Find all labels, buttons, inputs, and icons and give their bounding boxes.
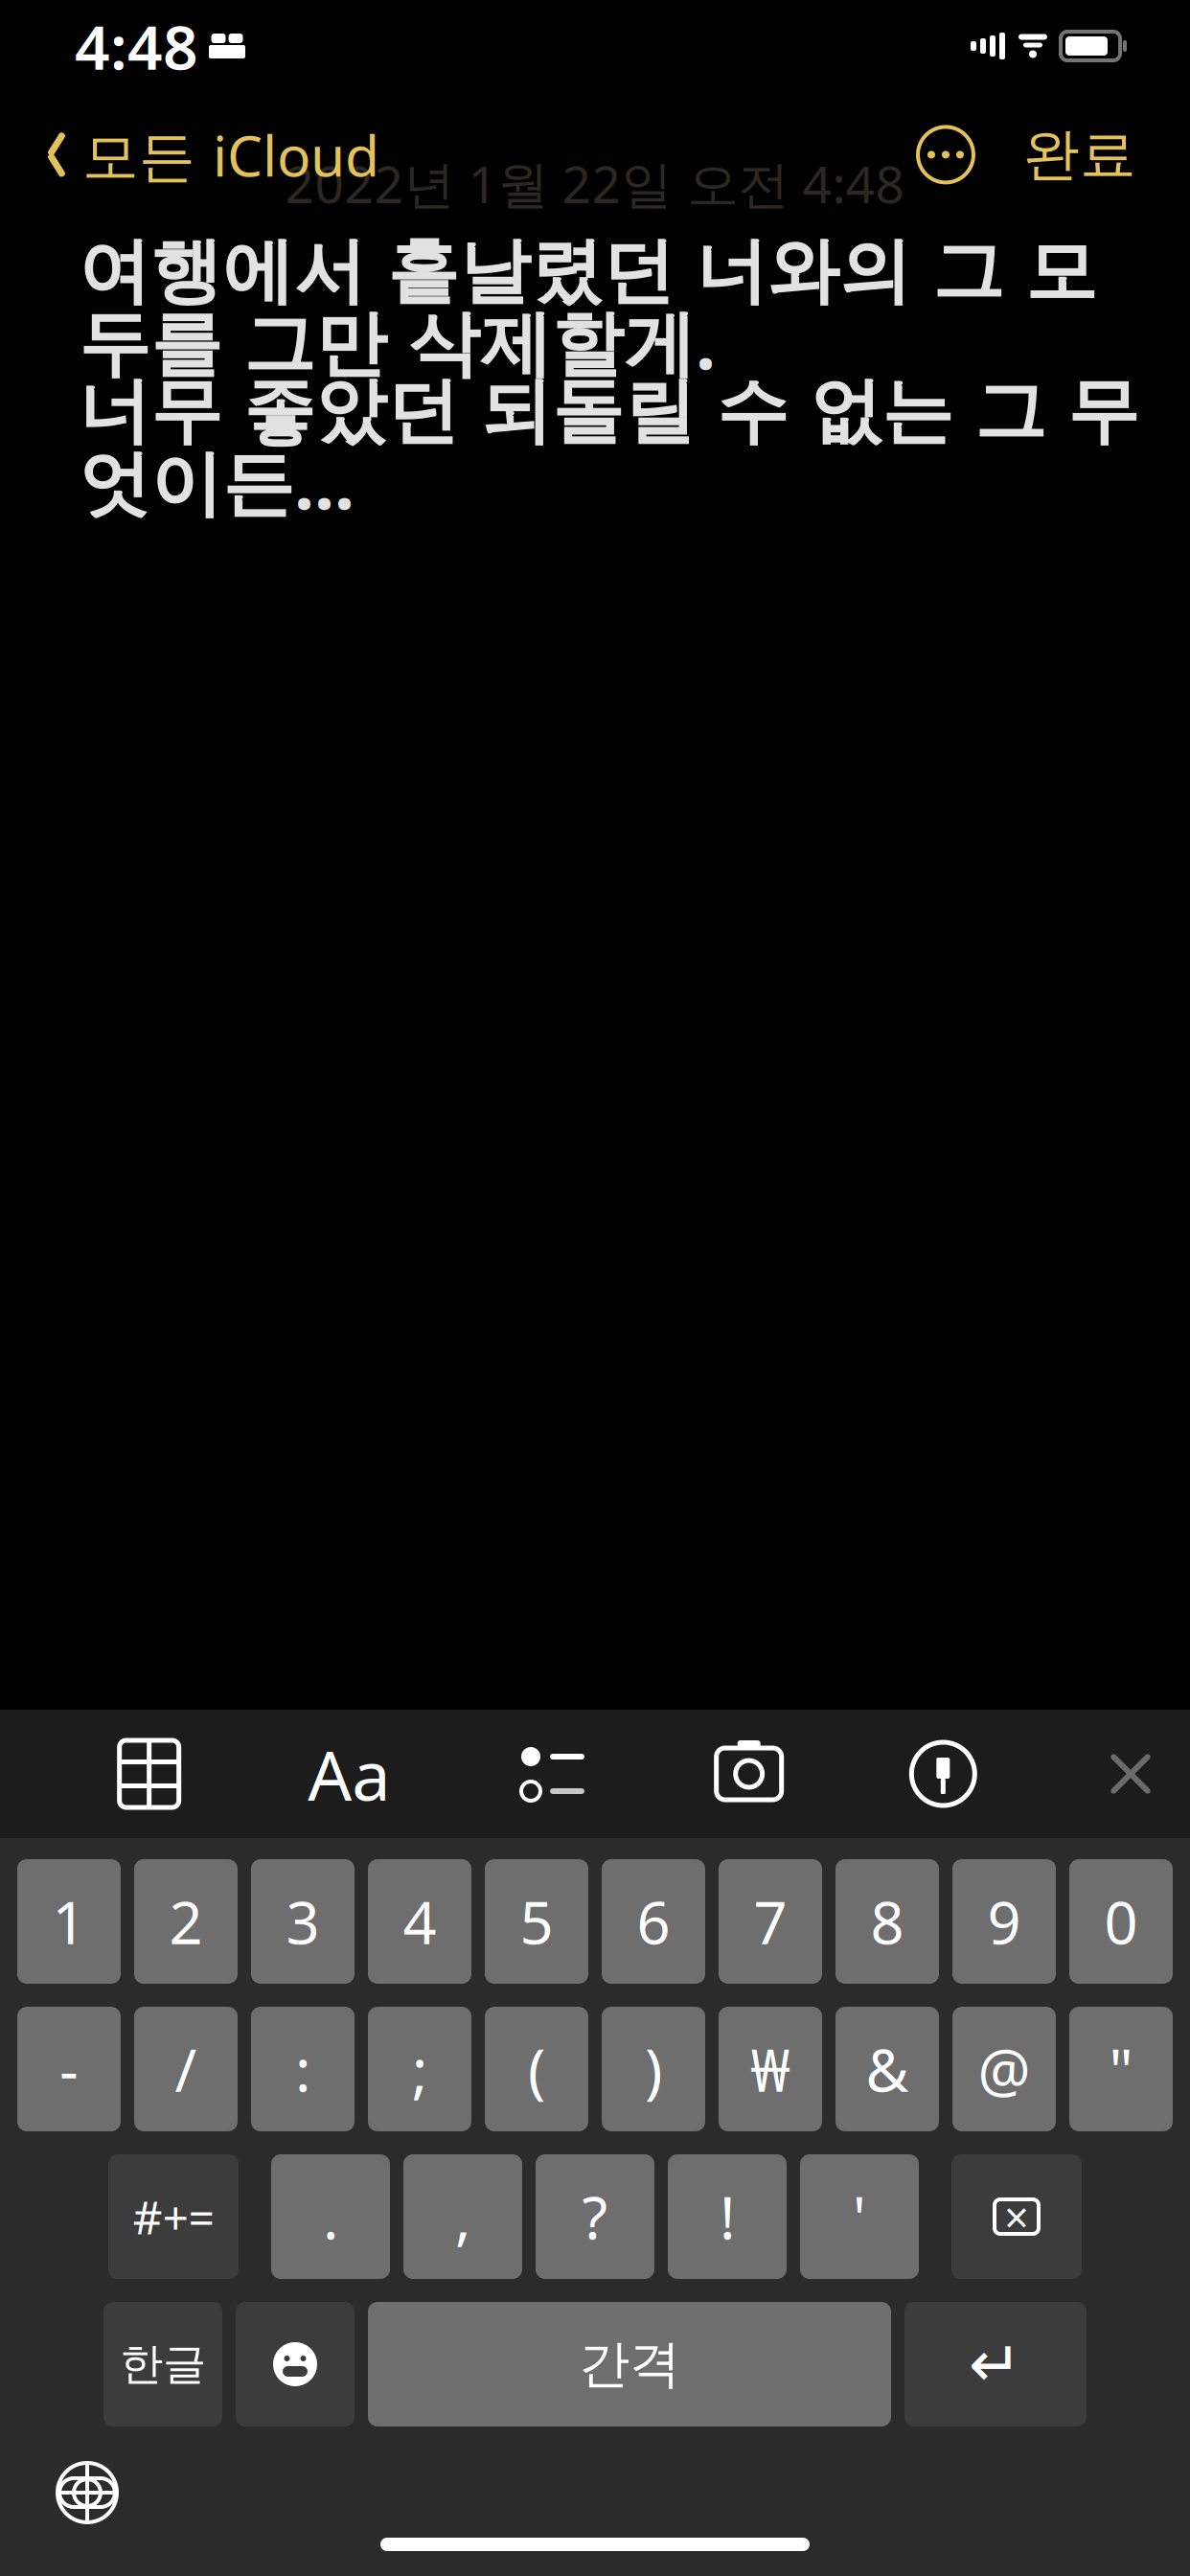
staticText: 두를 그만 삭제할게. xyxy=(79,294,716,389)
button[interactable]: 9 xyxy=(952,1859,1056,1984)
staticText: 한글 xyxy=(120,2338,206,2391)
button[interactable]: 6 xyxy=(602,1859,705,1984)
button[interactable]: 3 xyxy=(251,1859,355,1984)
button[interactable]: ) xyxy=(602,2007,705,2131)
staticText: " xyxy=(1109,2030,1133,2108)
button[interactable]: ' xyxy=(800,2154,919,2279)
staticText: #+= xyxy=(133,2186,214,2247)
staticText: - xyxy=(59,2030,79,2108)
staticText: 엇이든... xyxy=(79,434,355,529)
button[interactable]: Table xyxy=(110,1731,188,1817)
button[interactable]: Return xyxy=(904,2302,1087,2426)
staticText: Aa xyxy=(308,1728,390,1820)
staticText: : xyxy=(295,2030,310,2108)
staticText: ! xyxy=(720,2178,735,2256)
button[interactable]: 8 xyxy=(835,1859,939,1984)
button[interactable]: 0 xyxy=(1069,1859,1173,1984)
button[interactable]: , xyxy=(403,2154,522,2279)
button[interactable]: Hide keyboard xyxy=(1094,1737,1167,1810)
button[interactable]: 5 xyxy=(485,1859,588,1984)
button[interactable]: @ xyxy=(952,2007,1056,2131)
staticText: 간격 xyxy=(579,2333,680,2396)
staticText: ( xyxy=(528,2030,545,2108)
staticText: @ xyxy=(978,2030,1030,2108)
button[interactable]: Next keyboard xyxy=(46,2451,128,2534)
staticText: , xyxy=(455,2178,470,2256)
staticText: ' xyxy=(853,2178,866,2256)
button[interactable]: Delete xyxy=(951,2154,1082,2279)
button[interactable]: 한글 xyxy=(103,2302,222,2426)
staticText: 모든 iCloud xyxy=(82,117,379,192)
staticText: 9 xyxy=(987,1882,1021,1960)
staticText: & xyxy=(866,2030,909,2108)
button[interactable]: ₩ xyxy=(719,2007,822,2131)
staticText: 6 xyxy=(637,1882,670,1960)
button[interactable]: : xyxy=(251,2007,355,2131)
button[interactable]: #+= xyxy=(108,2154,239,2279)
button[interactable]: 모든 iCloud xyxy=(44,110,379,200)
staticText: ↵ xyxy=(969,2328,1022,2401)
staticText: × xyxy=(1004,2188,1029,2245)
staticText: 7 xyxy=(754,1882,787,1960)
staticText: 완료 xyxy=(1023,120,1136,189)
staticText: 0 xyxy=(1104,1882,1138,1960)
button[interactable]: Checklist xyxy=(510,1731,596,1817)
staticText: 3 xyxy=(286,1882,320,1960)
button[interactable]: . xyxy=(271,2154,390,2279)
staticText: 여행에서 흩날렸던 너와의 그 모 xyxy=(79,228,1097,315)
staticText: 8 xyxy=(870,1882,904,1960)
button[interactable]: 간격 xyxy=(368,2302,891,2426)
staticText: / xyxy=(175,2030,197,2108)
staticText: ? xyxy=(582,2178,608,2256)
staticText: ₩ xyxy=(751,2030,790,2108)
button[interactable]: " xyxy=(1069,2007,1173,2131)
staticText: 4:48 xyxy=(75,5,198,87)
staticText: 2022년 1월 22일 오전 4:48 xyxy=(285,149,905,217)
button[interactable]: Emoji xyxy=(236,2302,355,2426)
button[interactable]: - xyxy=(17,2007,121,2131)
button[interactable]: ( xyxy=(485,2007,588,2131)
staticText: ) xyxy=(645,2030,662,2108)
staticText: 1 xyxy=(52,1882,86,1960)
staticText: 5 xyxy=(520,1882,553,1960)
button[interactable]: Markup xyxy=(902,1733,984,1815)
button[interactable]: 1 xyxy=(17,1859,121,1984)
staticText: . xyxy=(323,2178,338,2256)
button[interactable]: ! xyxy=(668,2154,787,2279)
button[interactable]: Camera xyxy=(706,1731,792,1817)
staticText: ; xyxy=(412,2030,427,2108)
button[interactable]: 7 xyxy=(719,1859,822,1984)
staticText: 너무 좋았던 되돌릴 수 없는 그 무 xyxy=(79,368,1139,455)
button[interactable]: ? xyxy=(536,2154,654,2279)
button[interactable]: ; xyxy=(368,2007,471,2131)
button[interactable]: 2 xyxy=(134,1859,238,1984)
button[interactable]: More xyxy=(910,119,981,190)
button[interactable]: / xyxy=(134,2007,238,2131)
button[interactable]: Aa xyxy=(298,1718,400,1829)
button[interactable]: & xyxy=(835,2007,939,2131)
button[interactable]: 4 xyxy=(368,1859,471,1984)
staticText: 2 xyxy=(169,1882,203,1960)
button[interactable]: 완료 xyxy=(1023,113,1136,197)
staticText: 4 xyxy=(403,1882,436,1960)
